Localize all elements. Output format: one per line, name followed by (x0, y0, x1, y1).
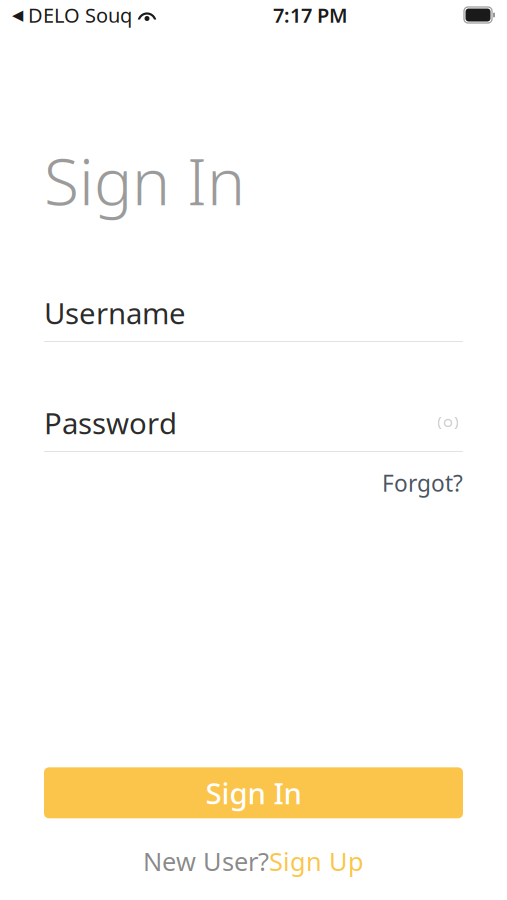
staticText: Sign In (44, 138, 245, 223)
button[interactable]: Sign In (44, 767, 463, 818)
staticText: Sign In (205, 773, 301, 812)
staticText: Sign Up (269, 844, 364, 878)
button[interactable]: New User? (143, 840, 364, 882)
staticText: ◀ (12, 7, 23, 23)
staticText: New User? (143, 844, 269, 878)
button[interactable]: Show password (433, 410, 463, 436)
staticText: DELO Souq (23, 2, 137, 28)
staticText: Username (44, 293, 186, 332)
button[interactable]: Forgot? (382, 464, 463, 502)
staticText: 7:17 PM (273, 2, 348, 28)
staticText: Forgot? (382, 468, 463, 498)
staticText: Password (44, 403, 177, 442)
